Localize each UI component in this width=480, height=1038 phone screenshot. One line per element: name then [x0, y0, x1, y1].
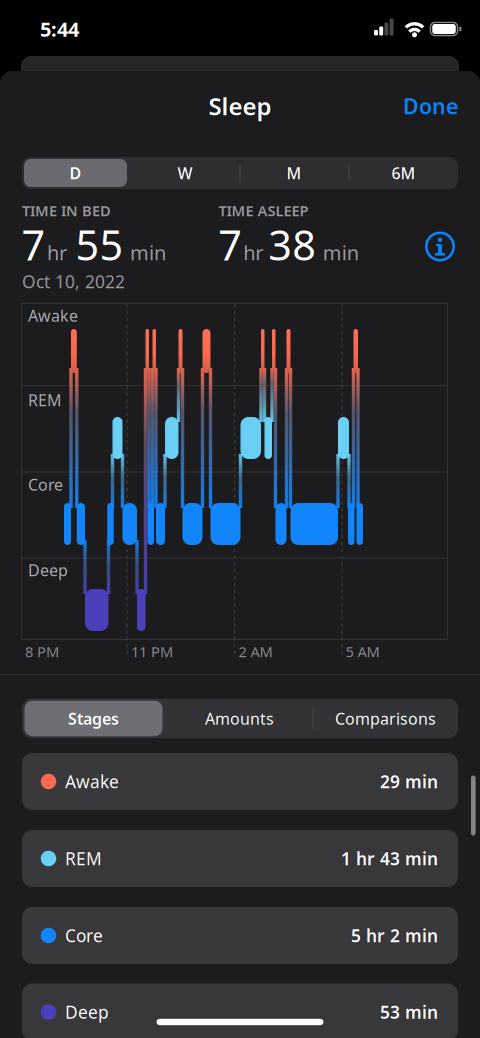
staticText: Oct 10, 2022 [22, 270, 125, 293]
staticText: REM [28, 389, 62, 411]
staticText: min [130, 239, 166, 266]
staticText: 7 [21, 217, 45, 272]
button[interactable]: Stages [23, 699, 163, 738]
staticText: Core [28, 474, 63, 495]
staticText: Deep [28, 559, 68, 581]
button[interactable]: Amounts [169, 699, 309, 738]
staticText: 6M [391, 162, 415, 184]
staticText: D [69, 162, 81, 184]
staticText: 29 min [380, 770, 438, 793]
button[interactable]: M [240, 157, 348, 189]
button[interactable]: Comparisons [312, 699, 458, 738]
button[interactable]: W [131, 157, 239, 189]
staticText: REM [65, 847, 102, 870]
staticText: 7 [218, 217, 242, 272]
button[interactable]: Done [368, 86, 458, 126]
staticText: 5 AM [345, 642, 379, 661]
button[interactable]: About Sleep Stages [420, 226, 460, 266]
staticText: W [177, 162, 192, 184]
staticText: hr [47, 239, 67, 266]
staticText: M [286, 162, 301, 184]
staticText: 11 PM [131, 642, 173, 661]
staticText: 53 min [380, 1000, 438, 1023]
staticText: 2 AM [238, 642, 272, 661]
button[interactable]: D [21, 157, 129, 189]
staticText: Awake [28, 305, 78, 326]
staticText: min [323, 239, 359, 266]
staticText: TIME IN BED [22, 201, 111, 220]
staticText: Done [403, 92, 458, 120]
button[interactable]: 6M [349, 157, 457, 189]
staticText: 55 [75, 217, 123, 272]
staticText: Deep [65, 1000, 109, 1023]
staticText: 5 hr 2 min [351, 924, 438, 947]
staticText: Comparisons [335, 708, 436, 729]
staticText: TIME ASLEEP [218, 201, 308, 220]
staticText: 38 [268, 217, 316, 272]
staticText: Core [65, 924, 103, 947]
staticText: Amounts [205, 708, 274, 729]
staticText: Stages [68, 708, 119, 729]
staticText: hr [243, 239, 263, 266]
staticText: 5:44 [40, 16, 79, 42]
staticText: 1 hr 43 min [341, 847, 438, 870]
staticText: 8 PM [25, 642, 59, 661]
staticText: Awake [65, 770, 119, 793]
staticText: Sleep [208, 90, 271, 122]
